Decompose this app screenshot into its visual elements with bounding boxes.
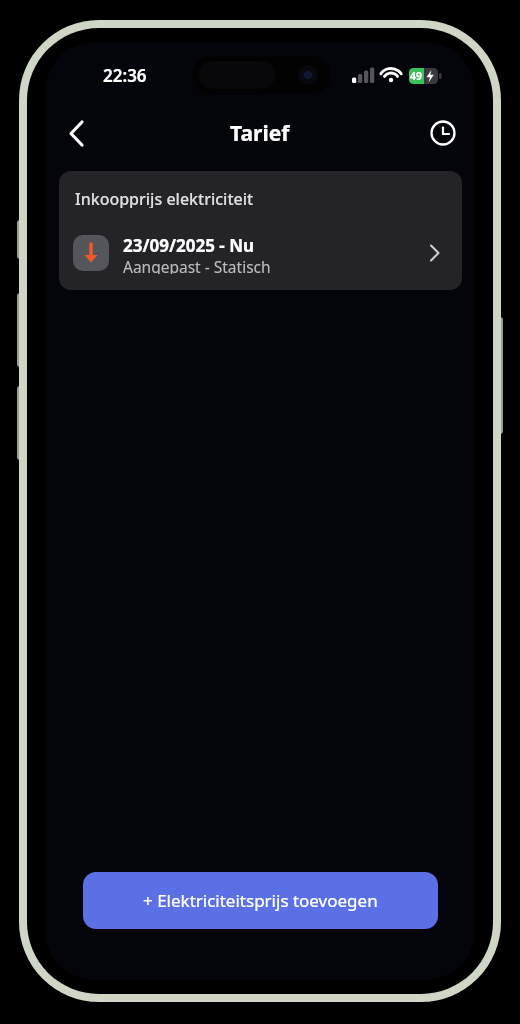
staticText: Aangepast - Statisch xyxy=(123,256,271,274)
staticText: 49 xyxy=(410,69,423,83)
button[interactable]: + Elektriciteitsprijs toevoegen xyxy=(83,872,438,929)
button[interactable]: 23/09/2025 - Nu xyxy=(59,227,462,290)
staticText: + Elektriciteitsprijs toevoegen xyxy=(143,889,378,912)
staticText: Inkoopprijs elektriciteit xyxy=(75,188,254,208)
button[interactable] xyxy=(427,117,459,149)
staticText: 22:36 xyxy=(103,64,147,86)
staticText: 23/09/2025 - Nu xyxy=(123,234,255,253)
staticText: Tarief xyxy=(230,119,290,147)
button[interactable] xyxy=(58,117,94,151)
